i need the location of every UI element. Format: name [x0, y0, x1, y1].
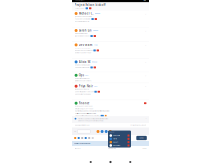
staticText: Sprint 24 retrospective — [75, 47, 91, 49]
staticText: Maintenance at 11pm UTC — [75, 80, 92, 82]
staticText: Good progress on the API — [75, 49, 93, 51]
staticText: Subject: Falcon kickoff — [74, 143, 90, 144]
staticText: Inbox — [75, 10, 79, 11]
staticText: Priya Nair — [79, 84, 93, 88]
staticText: andrew.k — [113, 135, 120, 136]
staticText: go to everyone. Use reply-all sparingly. — [78, 120, 104, 122]
staticText: The new components — [75, 66, 90, 68]
button[interactable]: Reshma P. — [108, 144, 131, 147]
staticText: Design system updates — [75, 64, 91, 66]
button[interactable]: andrew.k — [108, 134, 131, 137]
staticText: I've reviewed the draft — [75, 21, 89, 22]
staticText: Project Falcon kickoff — [75, 3, 106, 7]
staticText: remittance advice will follow by email. — [75, 112, 96, 114]
staticText: Attached is the revised — [75, 35, 90, 37]
staticText: ●▲▮ — [143, 0, 146, 1]
button[interactable]: Dev Team — [72, 42, 149, 58]
button[interactable]: Finance — [72, 100, 149, 116]
staticText: 1:20 PM — [93, 30, 98, 31]
staticText: 9:48 AM — [92, 61, 97, 63]
staticText: Maria — [113, 138, 117, 140]
staticText: Let us know if anything needs adjusting. — [75, 115, 100, 117]
staticText: Confirming tomorrow 10am — [75, 91, 94, 93]
staticText: Send — [140, 137, 144, 139]
staticText: Client onboarding call — [75, 88, 89, 90]
staticText: Sarah Lin — [79, 29, 92, 32]
staticText: Dave T. — [113, 141, 118, 143]
staticText: This message was sent to a distribution … — [78, 118, 109, 120]
button[interactable]: Alicia W. — [72, 59, 149, 72]
button[interactable]: Sarah Lin — [72, 27, 149, 41]
staticText: Finance — [79, 101, 90, 105]
staticText: To / cc — [110, 131, 115, 133]
staticText: ⌄ — [144, 29, 146, 32]
staticText: Alicia W. — [79, 60, 91, 64]
staticText: Dev Team — [79, 43, 93, 47]
staticText: to me, Michael, Sarah • Today — [75, 108, 94, 110]
staticText: Ops — [79, 73, 84, 77]
staticText: Yest. — [85, 74, 88, 76]
staticText: Agenda attached below — [75, 93, 91, 95]
staticText: Invoice #4821 approved — [75, 105, 93, 107]
staticText: Project Falcon • Kickoff — [130, 124, 146, 126]
staticText: Send — [142, 148, 146, 149]
staticText: ⌄ — [144, 85, 146, 88]
button[interactable]: Michael C. — [72, 10, 149, 27]
button[interactable]: Ops — [72, 72, 149, 83]
staticText: ⌄ — [144, 60, 146, 63]
staticText: To — [74, 131, 76, 132]
button[interactable]: Send — [136, 136, 147, 140]
staticText: Reshma P. — [113, 145, 120, 146]
button[interactable]: Priya Nair — [72, 83, 149, 100]
staticText: Save draft — [108, 148, 115, 149]
staticText: Re: Budget planning — [75, 33, 88, 34]
staticText: Payment has been scheduled for the fifte… — [75, 110, 110, 112]
staticText: 11:02 — [94, 44, 98, 46]
staticText: Quarterly report review — [75, 16, 92, 17]
staticText: ⌄ — [144, 43, 146, 46]
staticText: Yest. — [94, 85, 97, 87]
staticText: 10:06 Mon, Jun 9 — [75, 0, 85, 1]
button[interactable]: Dave T. — [108, 140, 131, 144]
staticText: Deploy window moved — [75, 77, 90, 79]
staticText: Thanks for sending this — [75, 18, 91, 20]
button[interactable]: Maria — [108, 137, 131, 140]
staticText: ⌄ — [144, 12, 146, 15]
staticText: Demo is ready for Friday — [75, 52, 92, 54]
staticText: 2:45 PM — [95, 13, 100, 14]
staticText: 12 messages — [75, 7, 85, 9]
staticText: Michael C. — [79, 12, 94, 15]
staticText: 4 people on this thread — [75, 124, 90, 126]
staticText: Discard — [75, 148, 81, 149]
